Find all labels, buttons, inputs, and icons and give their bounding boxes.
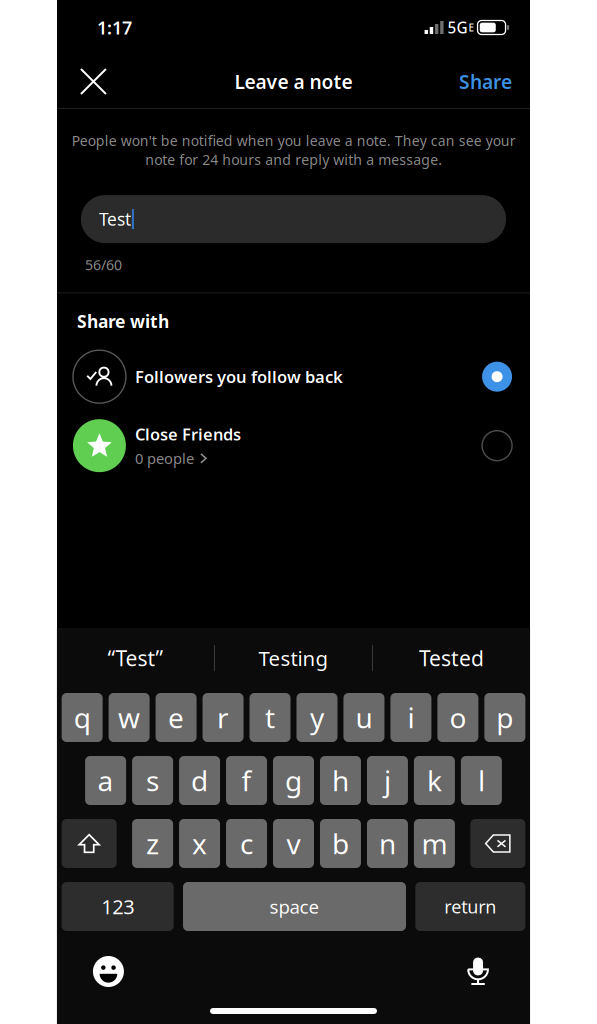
button[interactable]: m (414, 819, 455, 868)
button[interactable]: e (156, 693, 197, 742)
staticText: n (379, 824, 396, 862)
staticText: j (384, 761, 391, 799)
button[interactable]: Close Friends (57, 419, 530, 472)
staticText: 56/60 (85, 255, 122, 274)
button[interactable]: “Test” (57, 644, 214, 672)
button[interactable]: r (202, 693, 243, 742)
button[interactable]: u (343, 693, 384, 742)
button[interactable]: i (390, 693, 431, 742)
staticText: “Test” (107, 644, 163, 672)
button[interactable]: z (132, 819, 173, 868)
staticText: z (146, 824, 159, 862)
staticText: Test (99, 207, 131, 231)
button[interactable]: v (273, 819, 314, 868)
staticText: u (355, 698, 372, 736)
button[interactable]: t (249, 693, 290, 742)
button[interactable]: k (414, 756, 455, 805)
staticText: t (265, 698, 275, 736)
staticText: w (118, 698, 140, 736)
button[interactable]: return (415, 882, 525, 931)
staticText: h (332, 761, 349, 799)
button[interactable]: Followers you follow back (57, 350, 530, 403)
button[interactable]: Share (454, 63, 517, 100)
button[interactable]: s (132, 756, 173, 805)
button[interactable]: Dictation (466, 956, 490, 987)
button[interactable]: n (367, 819, 408, 868)
staticText: b (332, 824, 349, 862)
button[interactable]: Emoji (93, 956, 124, 987)
staticText: f (241, 761, 251, 799)
button[interactable]: Shift (62, 819, 117, 868)
button[interactable]: space (183, 882, 406, 931)
staticText: a (98, 761, 114, 799)
staticText: y (310, 698, 324, 736)
staticText: e (168, 698, 184, 736)
staticText: v (286, 824, 300, 862)
button[interactable]: j (367, 756, 408, 805)
staticText: Leave a note (234, 68, 352, 95)
staticText: x (192, 824, 207, 862)
staticText: Share with (77, 309, 169, 333)
staticText: Testing (258, 644, 328, 672)
button[interactable]: Testing (215, 644, 372, 672)
button[interactable]: Close (76, 64, 111, 99)
staticText: Followers you follow back (135, 365, 343, 388)
button[interactable]: o (437, 693, 478, 742)
staticText: space (269, 894, 319, 919)
staticText: m (421, 824, 447, 862)
button[interactable]: x (179, 819, 220, 868)
staticText: i (407, 698, 414, 736)
button[interactable]: b (320, 819, 361, 868)
staticText: Tested (419, 644, 484, 672)
staticText: Share (459, 68, 512, 95)
staticText: p (496, 698, 513, 736)
button[interactable]: l (461, 756, 502, 805)
button[interactable]: h (320, 756, 361, 805)
staticText: l (478, 761, 485, 799)
button[interactable]: Delete (470, 819, 525, 868)
staticText: 5G (448, 17, 468, 38)
staticText: r (217, 698, 229, 736)
staticText: 123 (101, 893, 134, 920)
button[interactable]: g (273, 756, 314, 805)
staticText: d (191, 761, 208, 799)
staticText: o (449, 698, 466, 736)
button[interactable]: y (296, 693, 337, 742)
staticText: c (240, 824, 253, 862)
staticText: Close Friends (135, 423, 241, 445)
staticText: k (427, 761, 442, 799)
staticText: q (74, 698, 91, 736)
button[interactable]: f (226, 756, 267, 805)
button[interactable]: d (179, 756, 220, 805)
staticText: 1:17 (97, 15, 132, 40)
button[interactable]: a (85, 756, 126, 805)
button[interactable]: 123 (62, 882, 174, 931)
button[interactable]: Tested (373, 644, 530, 672)
staticText: E (469, 21, 475, 34)
button[interactable]: q (62, 693, 103, 742)
button[interactable]: c (226, 819, 267, 868)
staticText: s (146, 761, 159, 799)
staticText: g (285, 761, 302, 799)
staticText: return (444, 894, 496, 919)
button[interactable]: p (484, 693, 525, 742)
button[interactable]: w (109, 693, 150, 742)
staticText: 0 people (135, 448, 194, 468)
staticText: People won't be notified when you leave … (71, 131, 515, 169)
